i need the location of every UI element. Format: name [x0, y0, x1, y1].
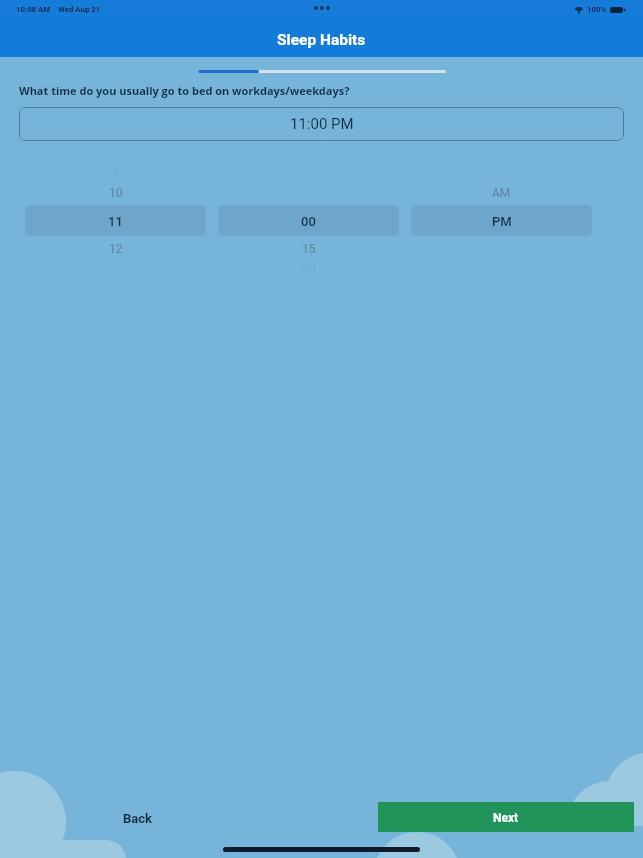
- button[interactable]: 11: [25, 208, 206, 234]
- staticText: 10:08 AM: [16, 5, 51, 14]
- staticText: Sleep Habits: [277, 31, 366, 49]
- staticText: Back: [123, 811, 152, 826]
- staticText: 11:00 PM: [290, 115, 354, 133]
- staticText: 12: [109, 242, 123, 256]
- staticText: 11: [108, 214, 123, 229]
- other: Wi-Fi: [574, 5, 584, 14]
- button[interactable]: 12: [25, 236, 206, 262]
- staticText: 10: [109, 186, 123, 200]
- button[interactable]: AM: [411, 180, 592, 206]
- staticText: AM: [492, 186, 511, 200]
- staticText: PM: [492, 214, 512, 229]
- button[interactable]: Next: [378, 802, 634, 832]
- button[interactable]: PM: [411, 208, 592, 234]
- button[interactable]: 15: [218, 236, 399, 262]
- staticText: 9: [112, 167, 119, 181]
- button[interactable]: Back: [103, 804, 171, 833]
- other: Battery: [610, 6, 625, 14]
- staticText: Wed Aug 21: [58, 5, 101, 14]
- button[interactable]: 10: [25, 180, 206, 206]
- button[interactable]: 11:00 PM: [19, 107, 624, 141]
- button[interactable]: 00: [218, 208, 399, 234]
- staticText: 00: [301, 214, 316, 229]
- staticText: 30: [302, 262, 316, 276]
- staticText: 15: [302, 242, 316, 256]
- staticText: What time do you usually go to bed on wo…: [19, 83, 350, 98]
- staticText: 100%: [587, 5, 607, 14]
- staticText: Next: [493, 811, 519, 825]
